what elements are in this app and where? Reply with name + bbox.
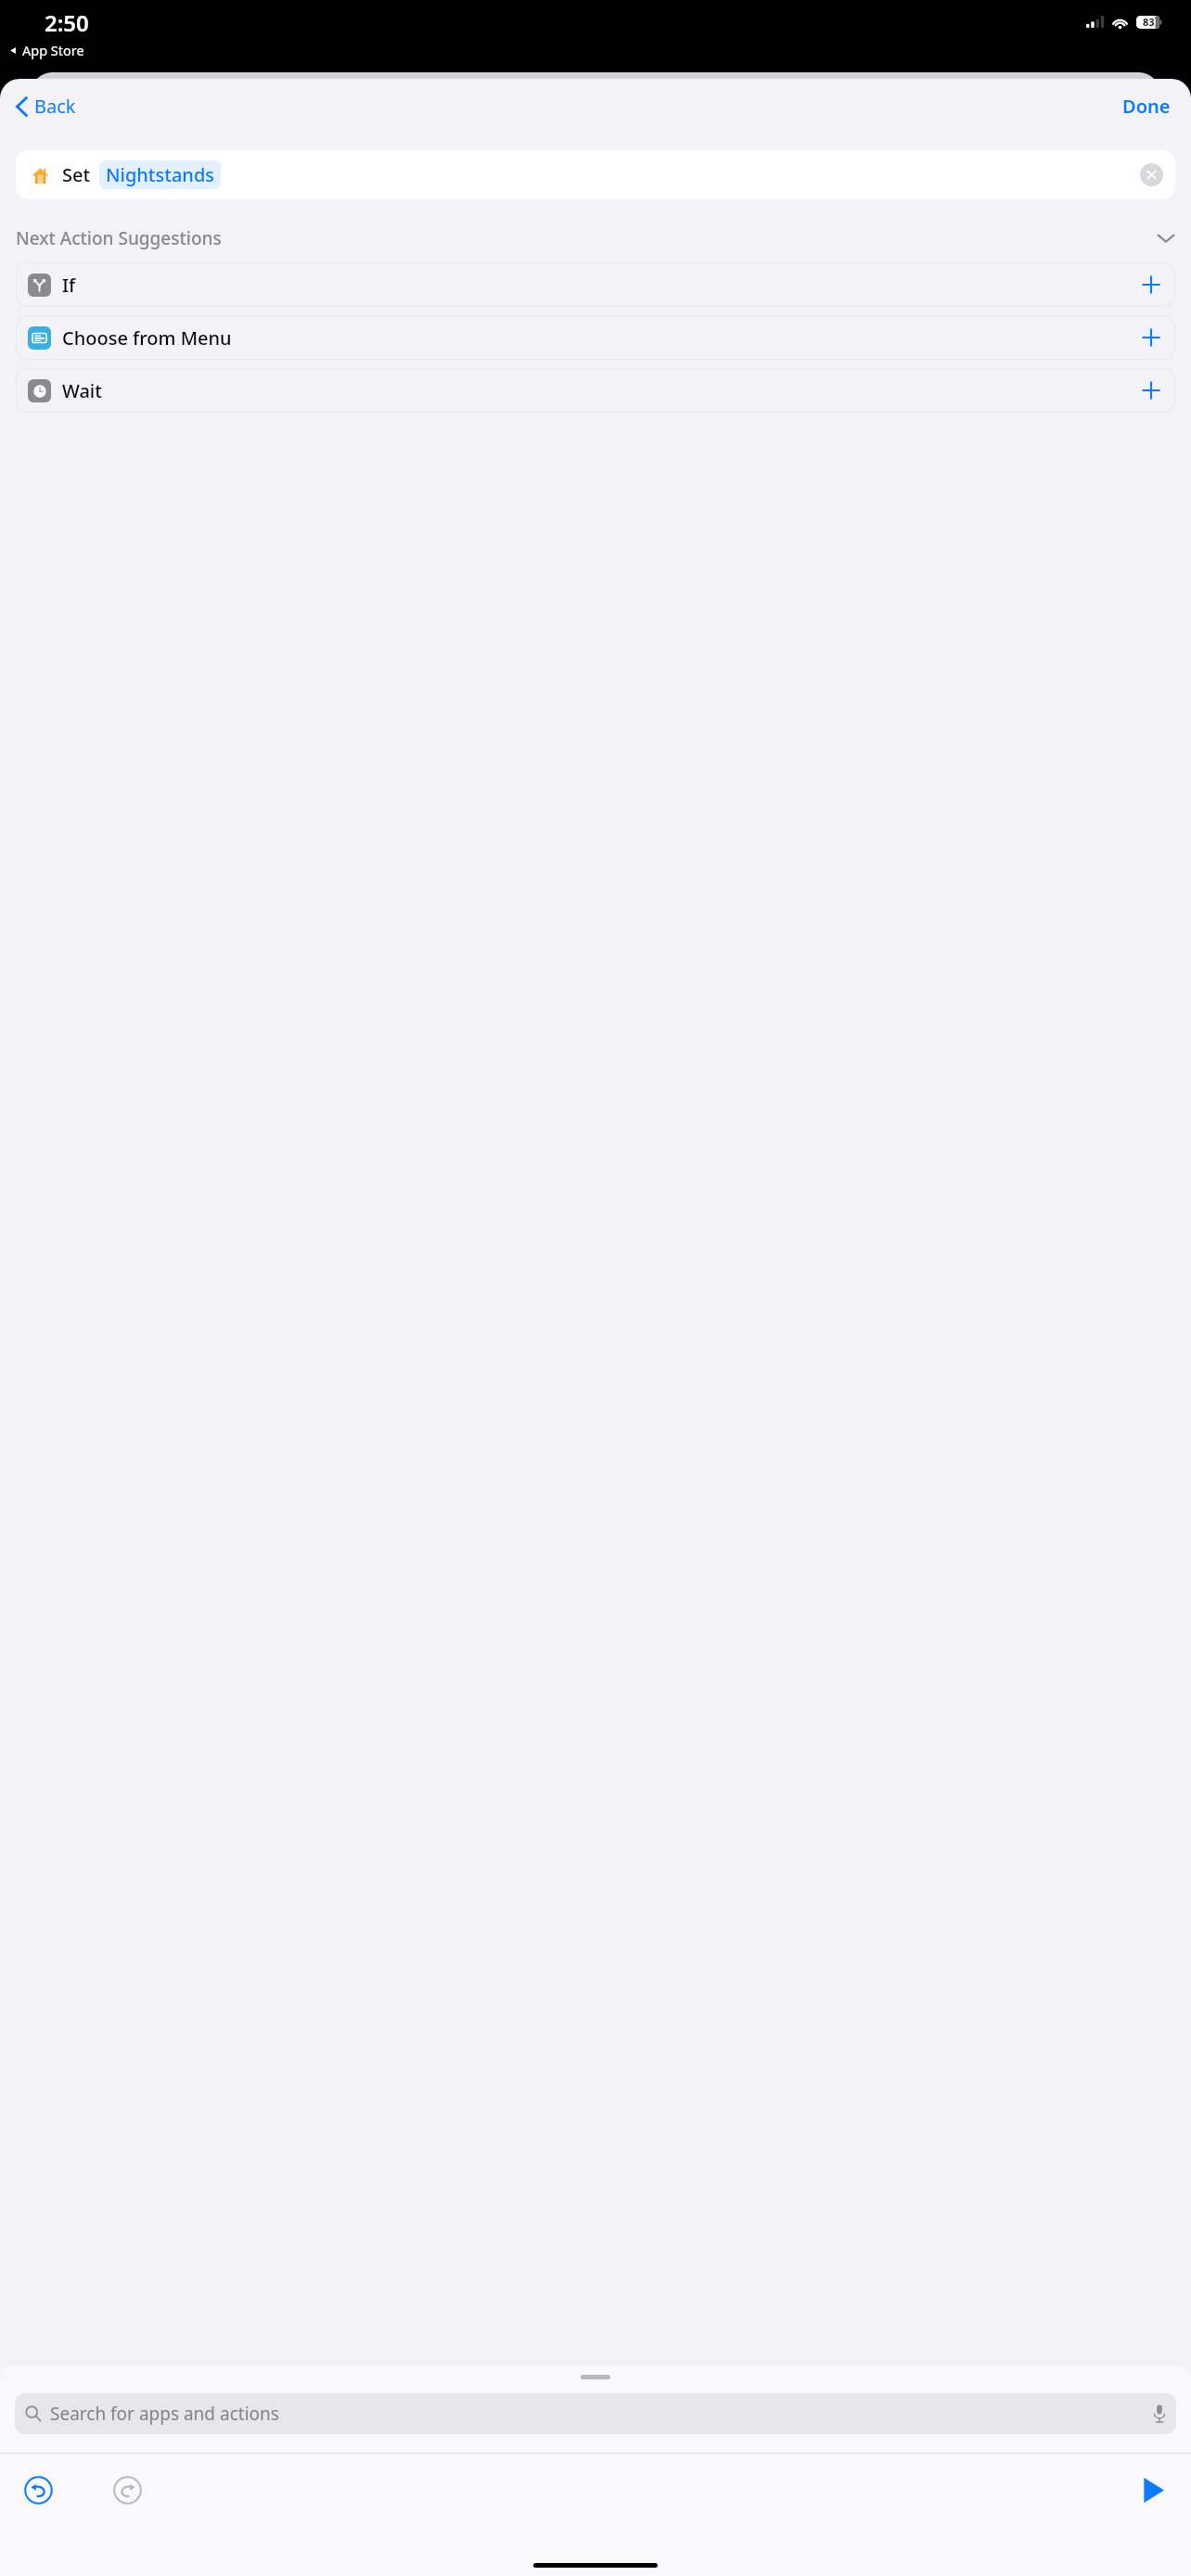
button[interactable]: Next Action Suggestions <box>16 223 1175 254</box>
button[interactable]: Choose from Menu <box>16 315 1175 360</box>
button[interactable]: Set <box>16 150 1175 199</box>
button[interactable]: Undo <box>17 2468 59 2511</box>
staticText: 2:50 <box>45 7 89 38</box>
staticText: If <box>62 273 76 298</box>
button[interactable]: Dictate <box>1153 2404 1166 2423</box>
staticText: Set <box>62 162 91 187</box>
staticText: Wait <box>62 378 102 403</box>
staticText: Choose from Menu <box>62 325 232 351</box>
staticText: App Store <box>22 41 84 59</box>
staticText: Search for apps and actions <box>50 2402 279 2426</box>
button[interactable]: Search for apps and actions <box>15 2393 1176 2434</box>
button[interactable]: Redo <box>106 2468 148 2511</box>
button[interactable]: Back <box>10 88 82 124</box>
staticText: Nightstands <box>106 162 214 187</box>
staticText: Back <box>34 94 76 119</box>
button[interactable]: Remove action <box>1140 163 1163 186</box>
button[interactable]: Wait <box>16 368 1175 413</box>
button[interactable]: Run shortcut <box>1132 2468 1174 2511</box>
staticText: Next Action Suggestions <box>16 226 222 250</box>
button[interactable]: If <box>16 262 1175 307</box>
staticText: Done <box>1122 94 1171 119</box>
staticText: 83 <box>1143 15 1155 29</box>
button[interactable]: Done <box>1115 88 1178 124</box>
